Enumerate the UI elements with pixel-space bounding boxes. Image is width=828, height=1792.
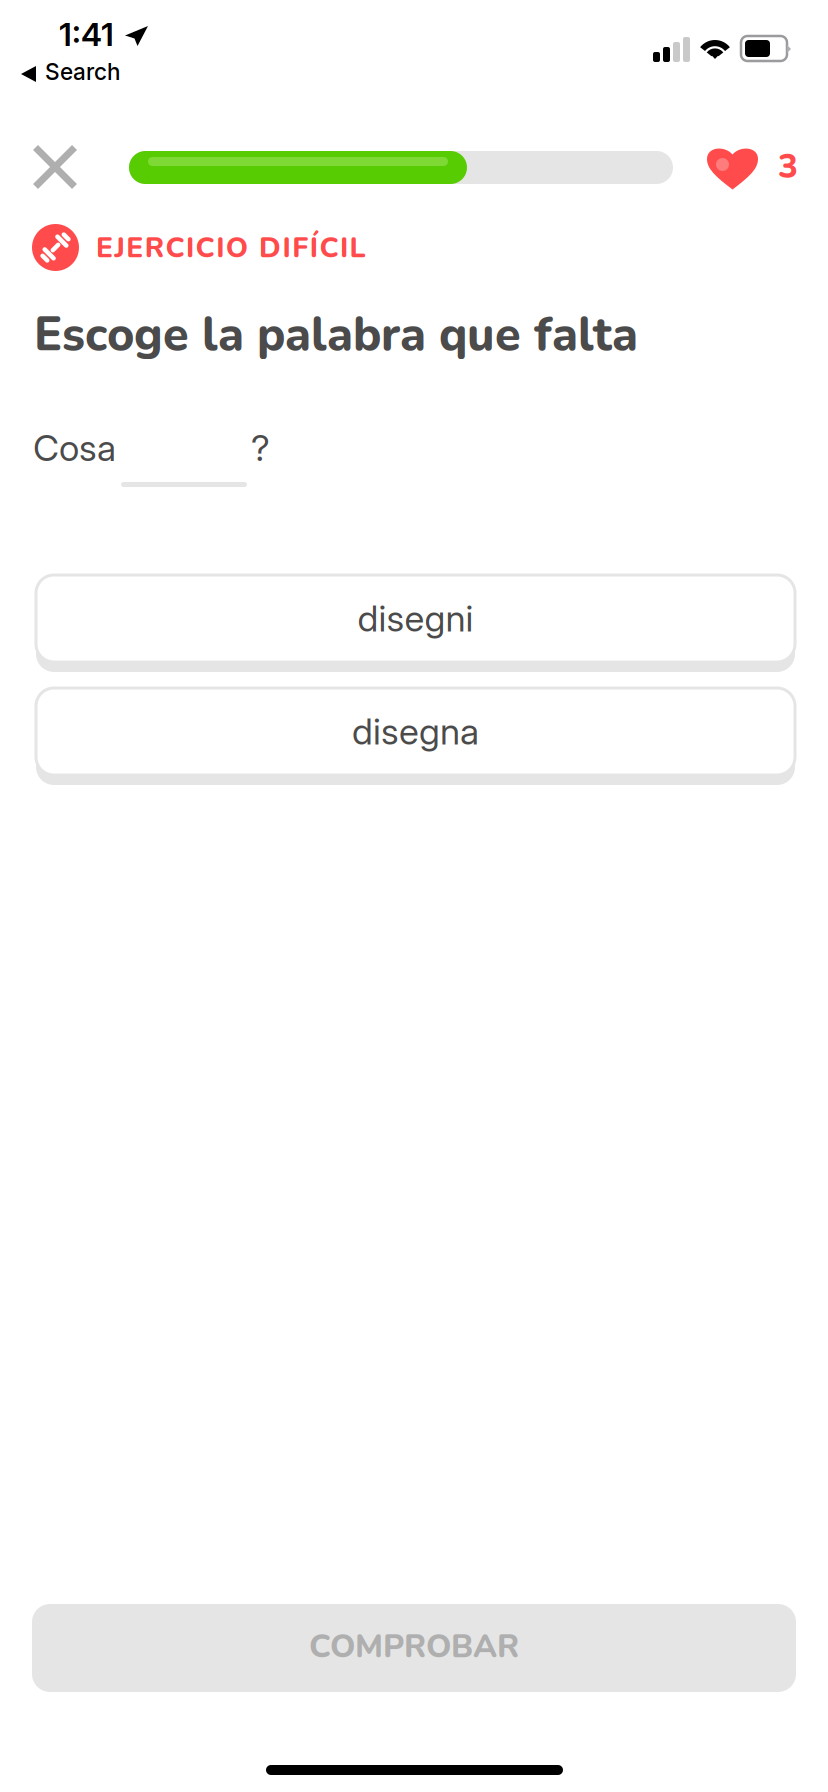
staticText: ? [251, 426, 270, 470]
staticText: disegna [352, 710, 479, 753]
button[interactable]: COMPROBAR [32, 1604, 796, 1692]
button[interactable]: disegna [36, 688, 795, 785]
staticText: Cosa [33, 426, 116, 470]
button[interactable]: Close [32, 144, 78, 190]
button[interactable]: disegni [36, 575, 795, 672]
staticText: 1:41 [59, 15, 114, 54]
staticText: COMPROBAR [309, 1625, 519, 1669]
staticText: EJERCICIO DIFÍCIL [96, 229, 366, 267]
staticText: disegni [357, 597, 473, 640]
staticText: Escoge la palabra que falta [34, 303, 638, 367]
staticText: 3 [778, 144, 798, 189]
staticText: Search [45, 58, 120, 85]
